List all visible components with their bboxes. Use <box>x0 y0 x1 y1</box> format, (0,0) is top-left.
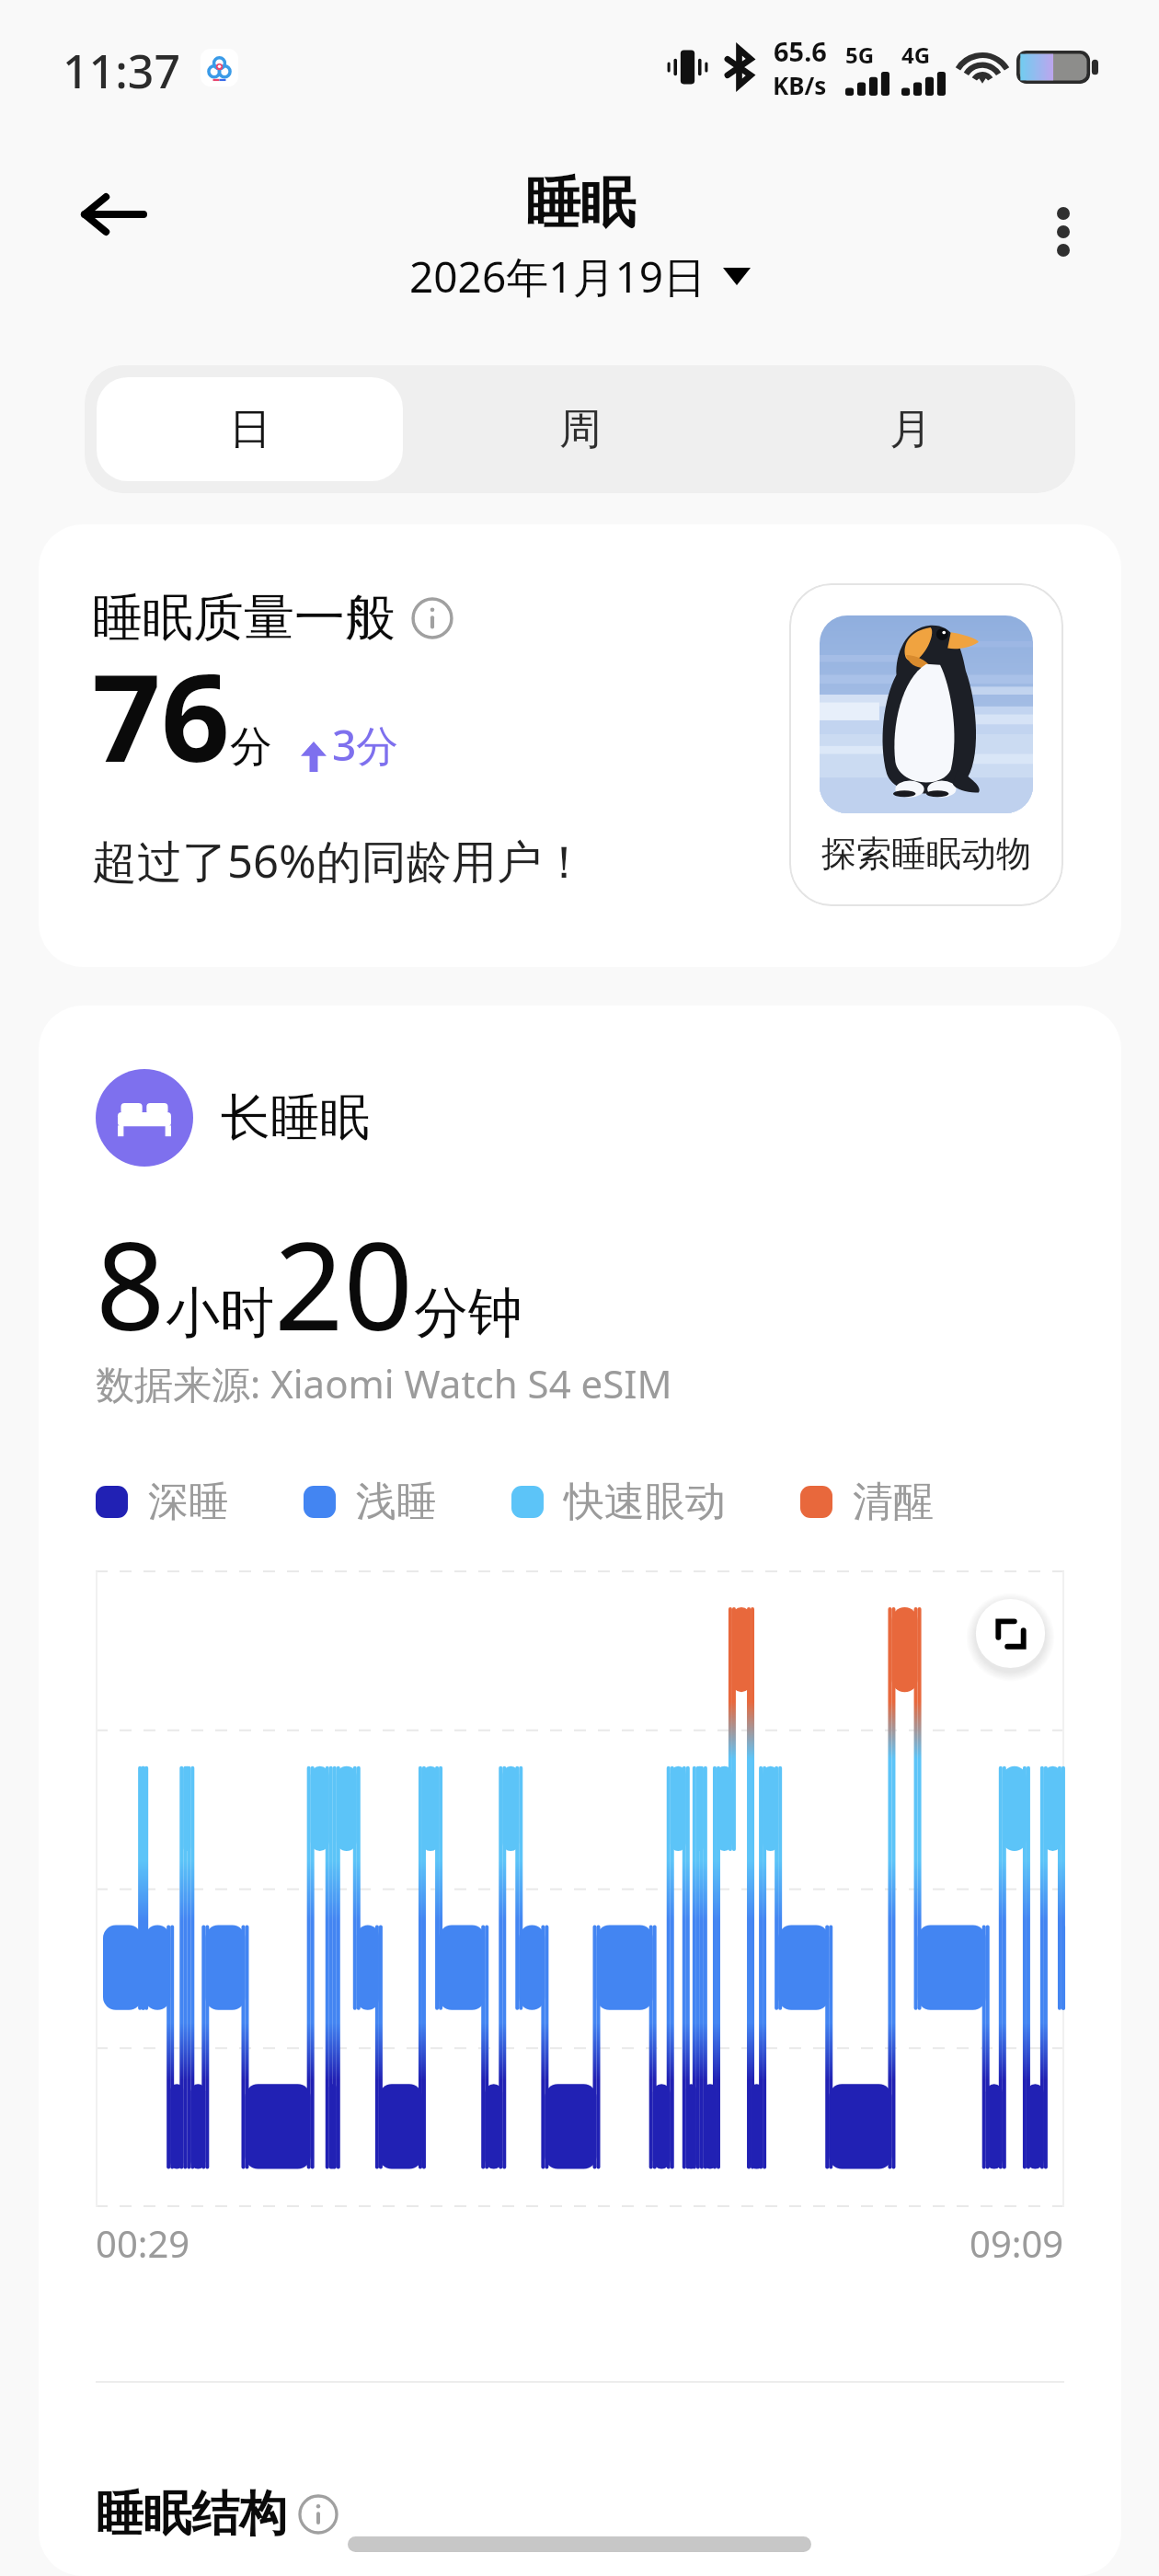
staticText: 分钟 <box>414 1279 522 1347</box>
button[interactable]: 深睡 <box>96 1477 229 1527</box>
staticText: 小时 <box>166 1279 274 1347</box>
staticText: 5G <box>845 40 875 70</box>
staticText: 探索睡眠动物 <box>821 832 1031 876</box>
button[interactable]: 2026年1月19日 <box>409 247 751 305</box>
button[interactable]: 清醒 <box>800 1477 934 1527</box>
button[interactable]: Expand chart <box>965 1588 1056 1679</box>
button[interactable]: 浅睡 <box>304 1477 437 1527</box>
staticText: 76 <box>92 633 230 797</box>
staticText: 11:37 <box>63 40 180 102</box>
staticText: 深睡 <box>148 1477 229 1527</box>
staticText: 长睡眠 <box>221 1087 370 1149</box>
staticText: 超过了56%的同龄用户！ <box>92 830 587 891</box>
button[interactable]: 月 <box>757 377 1063 481</box>
staticText: 清醒 <box>853 1477 934 1527</box>
button[interactable]: 探索睡眠动物 <box>789 583 1063 906</box>
button[interactable]: 日 <box>97 377 403 481</box>
staticText: 快速眼动 <box>564 1477 726 1527</box>
staticText: 睡眠结构 <box>96 2484 287 2545</box>
staticText: 8 <box>96 1201 166 1366</box>
staticText: 睡眠质量一般 <box>92 586 396 650</box>
button[interactable]: 睡眠质量一般 <box>39 524 1121 967</box>
staticText: 数据来源: Xiaomi Watch S4 eSIM <box>96 1357 672 1409</box>
button[interactable]: 周 <box>427 377 733 481</box>
staticText: 20 <box>274 1201 414 1366</box>
staticText: 日 <box>229 403 271 456</box>
staticText: 65.6 <box>774 33 827 69</box>
staticText: 00:29 <box>96 2218 190 2268</box>
staticText: 分 <box>230 720 272 774</box>
button[interactable]: More options <box>1017 186 1109 278</box>
staticText: 周 <box>559 403 602 456</box>
staticText: 2026年1月19日 <box>409 247 706 305</box>
staticText: 09:09 <box>970 2218 1064 2268</box>
button[interactable]: Back <box>66 168 158 260</box>
staticText: 4G <box>901 40 931 70</box>
staticText: 月 <box>889 403 932 456</box>
staticText: KB/s <box>773 69 827 101</box>
staticText: 浅睡 <box>356 1477 437 1527</box>
button[interactable]: 快速眼动 <box>511 1477 726 1527</box>
staticText: 3分 <box>332 716 399 774</box>
staticText: 睡眠 <box>525 168 636 238</box>
